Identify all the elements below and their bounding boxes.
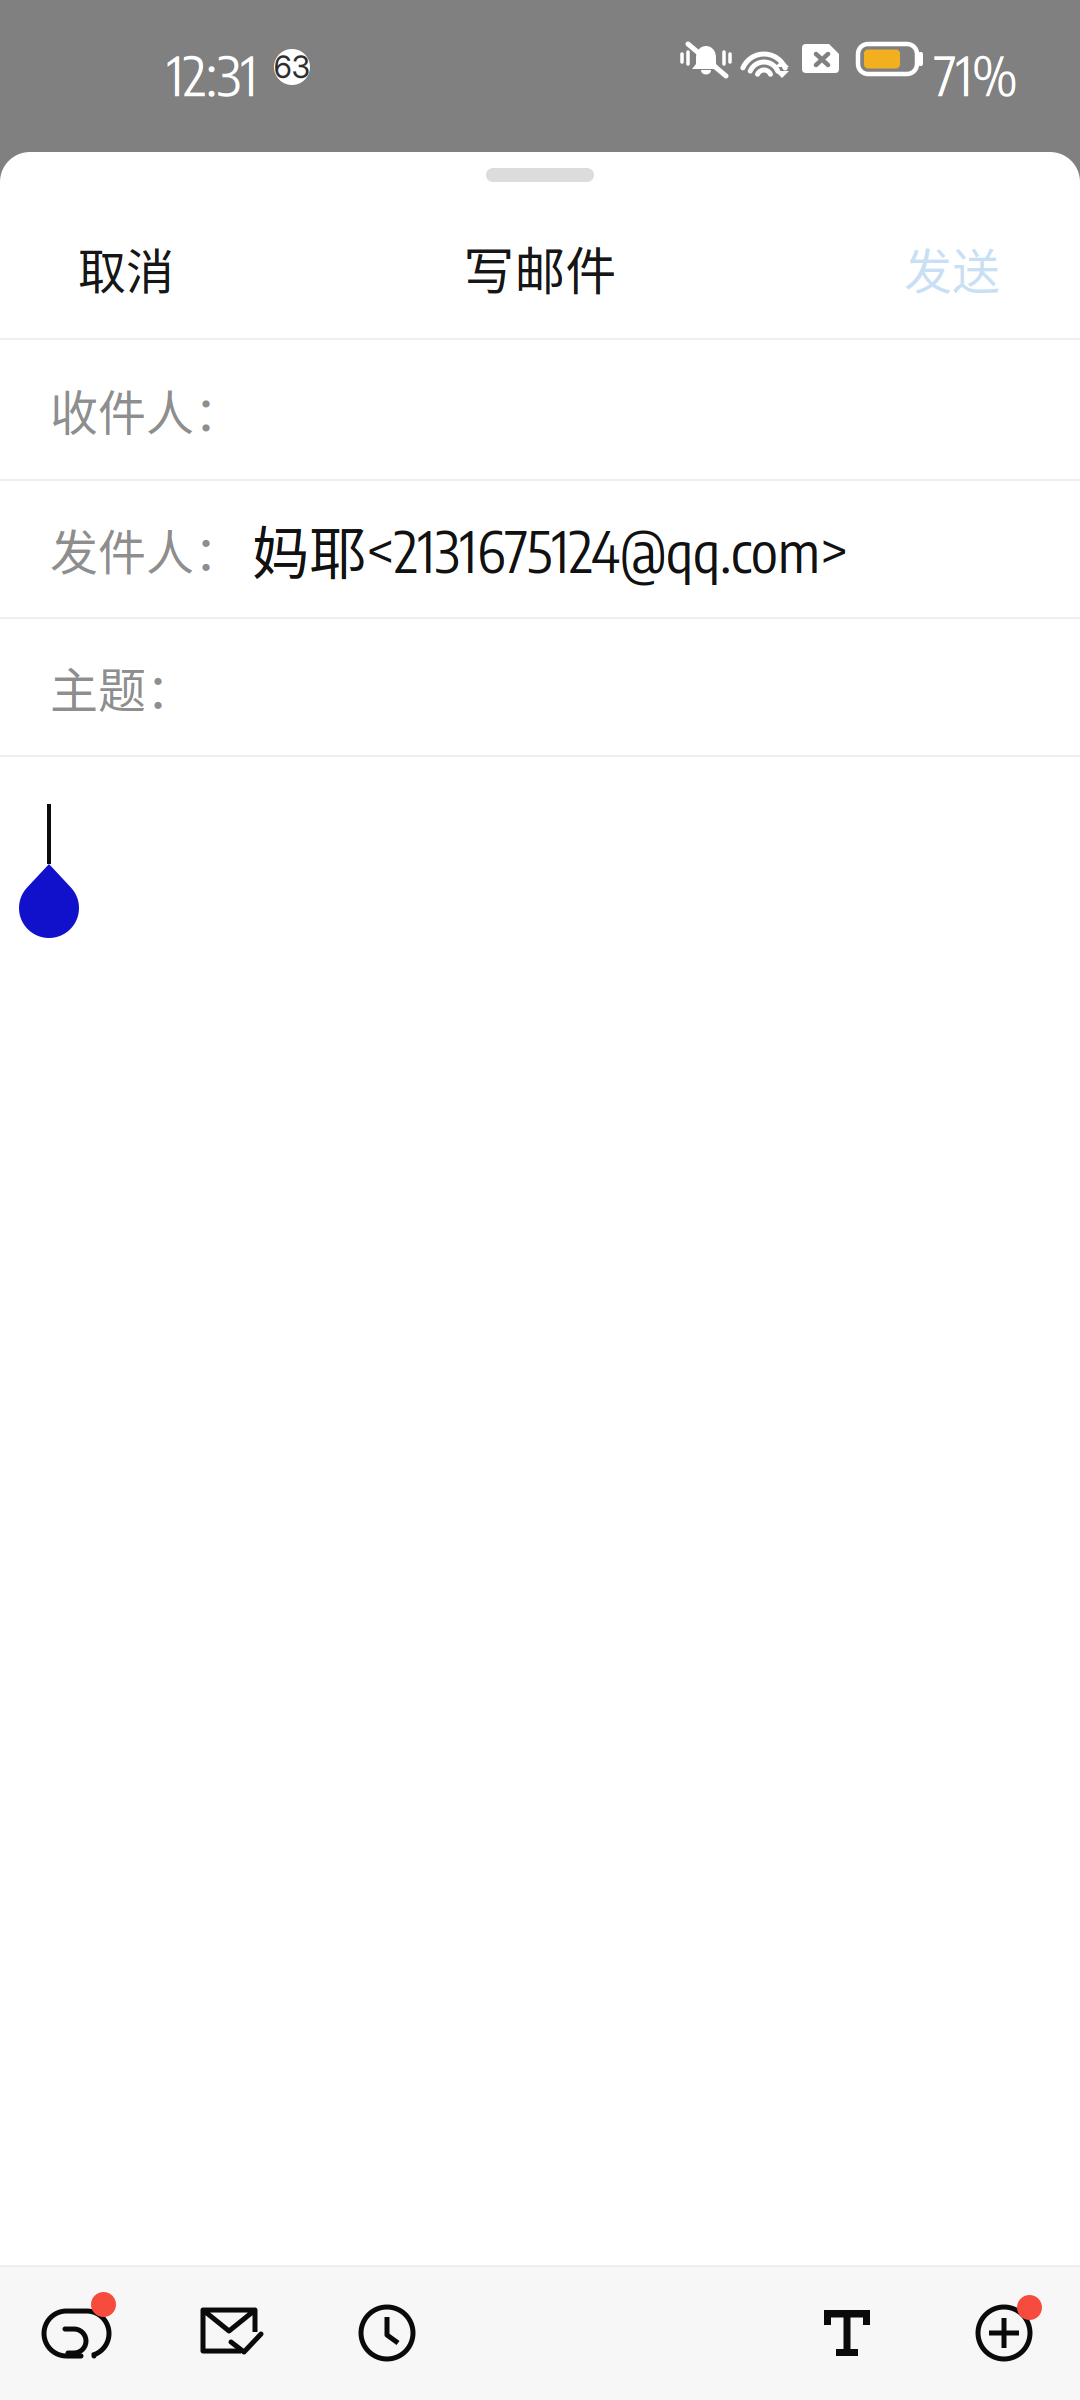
button[interactable]: Text formatting [812, 2267, 892, 2400]
staticText: 收件人： [50, 375, 242, 444]
staticText: 71% [934, 40, 1018, 108]
button[interactable]: 收件人： [0, 340, 1080, 479]
button[interactable]: 主题： [0, 619, 1080, 755]
button[interactable]: 发送 [864, 198, 1080, 338]
staticText: 12:31 [167, 40, 257, 108]
staticText: 发件人： [50, 514, 242, 584]
button[interactable]: 发件人： [0, 481, 1080, 617]
staticText: 妈耶<2131675124@qq.com> [252, 508, 849, 589]
button[interactable]: Stickers [32, 2267, 140, 2400]
staticText: 取消 [78, 233, 174, 303]
staticText: 63 [273, 48, 310, 85]
button[interactable]: 取消 [0, 198, 214, 338]
staticText: 主题： [50, 652, 194, 722]
staticText: 写邮件 [463, 231, 616, 305]
button[interactable]: Read receipt [190, 2267, 286, 2400]
button[interactable]: Schedule send [347, 2267, 435, 2400]
button[interactable]: Add attachment [964, 2267, 1060, 2400]
staticText: 发送 [904, 233, 1000, 303]
